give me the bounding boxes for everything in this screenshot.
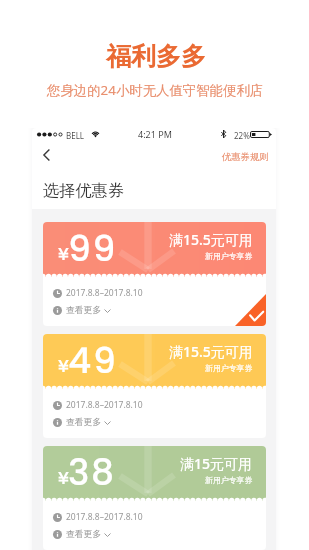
- staticText: 4:21 PM: [138, 128, 172, 140]
- staticText: 选择优惠券: [43, 180, 124, 200]
- button[interactable]: ¥: [43, 446, 266, 550]
- staticText: 2017.8.8–2017.8.10: [66, 399, 143, 411]
- staticText: 满15.5元可用: [169, 342, 253, 361]
- staticText: BELL: [66, 130, 85, 141]
- staticText: 满15元可用: [180, 454, 253, 473]
- staticText: ¥: [58, 465, 69, 490]
- staticText: 99: [68, 223, 117, 273]
- staticText: 38: [68, 447, 116, 497]
- staticText: 满15.5元可用: [169, 230, 253, 249]
- staticText: 查看更多: [66, 417, 102, 428]
- staticText: ¥: [58, 241, 69, 266]
- staticText: 查看更多: [66, 305, 102, 316]
- staticText: ¥: [58, 353, 69, 378]
- staticText: 22%: [234, 130, 250, 141]
- button[interactable]: ¥: [43, 222, 266, 326]
- staticText: 新用户专享券: [205, 363, 253, 373]
- button[interactable]: 查看更多: [53, 417, 111, 428]
- staticText: 2017.8.8–2017.8.10: [66, 511, 143, 523]
- staticText: 查看更多: [66, 529, 102, 540]
- button[interactable]: Back: [32, 141, 60, 168]
- staticText: 新用户专享券: [205, 251, 253, 261]
- staticText: 优惠券规则: [222, 151, 269, 163]
- staticText: 2017.8.8–2017.8.10: [66, 287, 143, 299]
- staticText: 您身边的24小时无人值守智能便利店: [47, 81, 264, 99]
- staticText: 新用户专享券: [205, 475, 253, 485]
- button[interactable]: 优惠券规则: [218, 147, 273, 167]
- staticText: 福利多多: [106, 41, 206, 72]
- button[interactable]: 查看更多: [53, 529, 111, 540]
- staticText: 49: [68, 335, 118, 385]
- button[interactable]: 查看更多: [53, 305, 111, 316]
- button[interactable]: ¥: [43, 334, 266, 438]
